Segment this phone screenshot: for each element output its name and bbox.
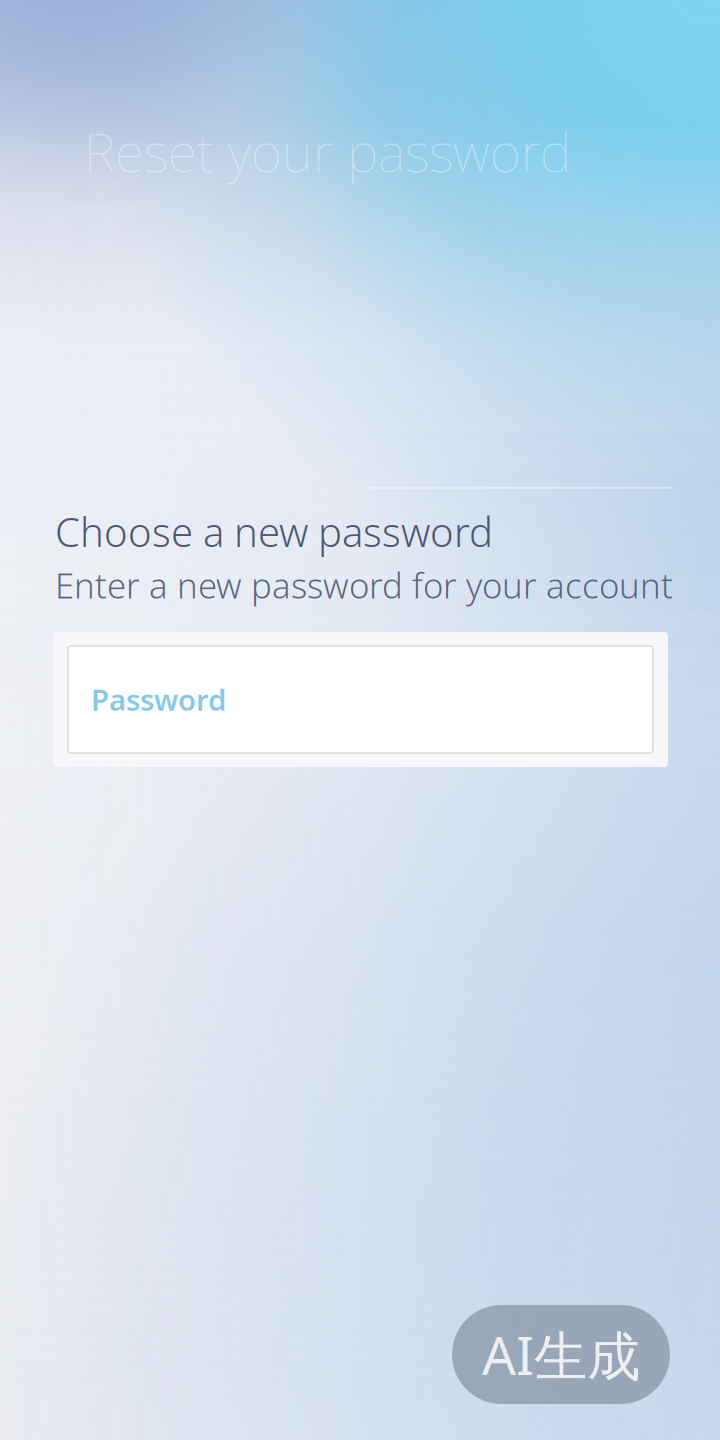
staticText: AI生成 <box>482 1319 640 1390</box>
staticText: Password <box>91 680 226 719</box>
button[interactable]: Password <box>53 632 668 767</box>
staticText: Choose a new password <box>55 505 493 558</box>
staticText: Reset your password <box>84 116 571 187</box>
staticText: Enter a new password for your account <box>55 562 673 608</box>
